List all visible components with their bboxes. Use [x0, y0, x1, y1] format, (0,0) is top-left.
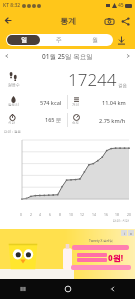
- staticText: 걸음수: [8, 82, 20, 87]
- button[interactable]: Ad info: [121, 230, 127, 236]
- button[interactable]: Next day: [121, 49, 135, 63]
- staticText: 14: [92, 212, 96, 217]
- button[interactable]: Close ad: [128, 230, 134, 236]
- staticText: 8: [59, 212, 61, 217]
- button[interactable]: Home: [45, 279, 90, 299]
- button[interactable]: Download: [113, 32, 129, 48]
- staticText: 01월 25일 목요일: [42, 52, 93, 61]
- button[interactable]: 일: [7, 35, 40, 45]
- button[interactable]: Previous day: [0, 49, 14, 63]
- button[interactable]: Screenshot: [101, 13, 117, 29]
- staticText: 11.04 km: [102, 99, 126, 106]
- staticText: 20: [127, 212, 131, 217]
- staticText: 18: [115, 212, 119, 217]
- staticText: 일: [21, 36, 27, 44]
- button[interactable]: 주: [42, 35, 76, 45]
- staticText: 0: [20, 212, 22, 217]
- staticText: KT 8:32: [3, 2, 21, 9]
- staticText: 통계: [60, 16, 76, 26]
- staticText: x: [130, 231, 132, 236]
- staticText: 16: [104, 212, 108, 217]
- staticText: 거리: [72, 103, 80, 108]
- button[interactable]: 거리: [68, 93, 131, 111]
- staticText: 12: [80, 212, 84, 217]
- button[interactable]: 속도: [68, 111, 131, 129]
- staticText: Tweety X 설레임: [89, 239, 113, 243]
- staticText: 10: [69, 212, 73, 217]
- staticText: i: [124, 231, 125, 236]
- staticText: 6: [49, 212, 51, 217]
- staticText: 2.75 km/h: [99, 117, 126, 124]
- button[interactable]: Recent apps: [0, 279, 45, 299]
- staticText: 칼로리: [8, 103, 19, 108]
- button[interactable]: 월: [78, 35, 112, 45]
- button[interactable]: 시간: [4, 111, 67, 129]
- staticText: 165 분: [45, 116, 62, 124]
- button[interactable]: Back: [0, 12, 17, 29]
- staticText: 시간: [8, 121, 16, 126]
- button[interactable]: 칼로리: [4, 93, 67, 111]
- staticText: 단위 : 걸음: [4, 129, 22, 134]
- button[interactable]: Advertisement: [0, 229, 135, 279]
- staticText: 574 kcal: [40, 99, 62, 106]
- staticText: 45: [118, 2, 124, 9]
- staticText: 속도: [72, 121, 80, 126]
- staticText: 걸음: [118, 83, 127, 89]
- staticText: 2: [30, 212, 32, 217]
- staticText: 월: [92, 36, 98, 44]
- staticText: 4: [39, 212, 41, 217]
- button[interactable]: Back: [90, 279, 135, 299]
- staticText: 17244: [68, 68, 117, 91]
- staticText: 단위 : 시간: [0, 218, 129, 223]
- staticText: 주: [56, 36, 62, 44]
- staticText: 0원!: [108, 252, 124, 263]
- button[interactable]: Share: [117, 13, 133, 29]
